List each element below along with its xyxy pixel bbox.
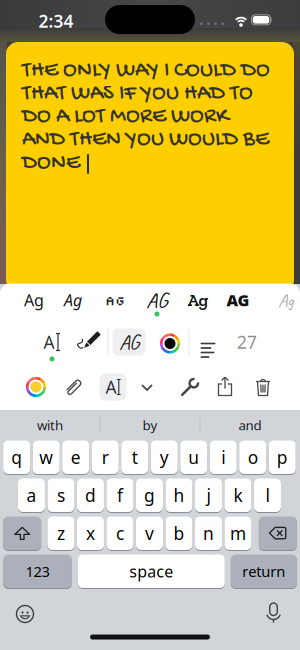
button[interactable]: and (238, 416, 261, 434)
button[interactable]: Delete (259, 516, 297, 550)
staticText: Ag (278, 288, 294, 312)
staticText: AG (146, 286, 168, 314)
button[interactable]: More (141, 384, 153, 392)
staticText: Ag (105, 291, 125, 309)
button[interactable]: AG (146, 286, 168, 314)
staticText: Ag (64, 289, 82, 311)
staticText: v (145, 522, 154, 545)
staticText: A (105, 375, 116, 398)
button[interactable]: g (136, 478, 163, 512)
button[interactable]: Share (217, 376, 232, 396)
staticText: THE ONLY WAY I COULD DO (22, 58, 270, 85)
staticText: e (71, 446, 81, 469)
button[interactable]: r (92, 440, 119, 474)
button[interactable]: by (142, 416, 157, 434)
button[interactable]: return (231, 554, 297, 588)
button[interactable]: Ag (187, 290, 208, 310)
button[interactable]: Text color (159, 332, 181, 354)
button[interactable]: b (165, 516, 192, 550)
button[interactable]: i (210, 440, 237, 474)
button[interactable]: with (37, 416, 63, 434)
button[interactable]: s (47, 478, 74, 512)
button[interactable]: 27 (237, 330, 257, 353)
staticText: space (129, 561, 173, 582)
staticText: y (160, 446, 169, 469)
staticText: DONE (22, 151, 80, 177)
button[interactable]: w (33, 440, 60, 474)
button[interactable]: Emoji (15, 604, 35, 624)
button[interactable]: z (47, 516, 74, 550)
staticText: n (203, 522, 214, 545)
button[interactable]: Tools (179, 376, 201, 398)
staticText: by (142, 416, 157, 434)
staticText: s (57, 484, 65, 507)
staticText: DO A LOT MORE WORK (22, 104, 228, 131)
button[interactable]: u (180, 440, 207, 474)
button[interactable]: k (224, 478, 251, 512)
staticText: m (230, 522, 246, 545)
button[interactable]: l (254, 478, 281, 512)
button[interactable]: Alignment (200, 334, 216, 351)
staticText: t (132, 446, 138, 469)
staticText: c (116, 522, 124, 545)
staticText: u (188, 446, 199, 469)
staticText: o (248, 446, 258, 469)
button[interactable]: n (195, 516, 222, 550)
button[interactable]: t (121, 440, 148, 474)
button[interactable]: Delete (255, 378, 270, 396)
staticText: b (173, 522, 184, 545)
button[interactable]: e (62, 440, 89, 474)
button[interactable]: y (151, 440, 178, 474)
button[interactable]: f (106, 478, 133, 512)
button[interactable]: Paper color (25, 376, 47, 398)
button[interactable]: o (239, 440, 266, 474)
button[interactable]: q (3, 440, 30, 474)
button[interactable]: Draw (76, 330, 102, 356)
staticText: z (57, 522, 65, 545)
button[interactable]: Dictate (265, 603, 281, 622)
staticText: a (26, 484, 36, 507)
staticText: 123 (25, 561, 49, 581)
staticText: r (102, 446, 109, 469)
staticText: and (238, 416, 261, 434)
staticText: h (173, 484, 184, 507)
staticText: Ag (24, 289, 44, 311)
button[interactable]: AG (226, 289, 249, 311)
button[interactable]: Attach (62, 375, 86, 399)
button[interactable]: Ag (278, 288, 294, 312)
staticText: w (39, 446, 53, 469)
staticText: return (242, 561, 285, 581)
staticText: AG (226, 289, 249, 311)
button[interactable]: m (224, 516, 251, 550)
staticText: q (11, 446, 22, 469)
button[interactable]: h (165, 478, 192, 512)
staticText: g (144, 484, 155, 507)
staticText: j (206, 484, 210, 507)
button[interactable]: j (195, 478, 222, 512)
button[interactable]: p (269, 440, 296, 474)
button[interactable]: Font (112, 328, 145, 355)
button[interactable]: space (78, 554, 225, 588)
staticText: AND THEN YOU WOULD BE (22, 127, 269, 154)
staticText: 27 (237, 330, 257, 353)
staticText: i (221, 446, 225, 469)
staticText: p (277, 446, 288, 469)
button[interactable]: Ag (105, 291, 125, 309)
button[interactable]: a (18, 478, 45, 512)
staticText: A (43, 330, 54, 353)
button[interactable]: 123 (3, 554, 72, 588)
button[interactable]: c (106, 516, 133, 550)
staticText: x (86, 522, 95, 545)
button[interactable]: Text tool (99, 373, 126, 400)
button[interactable]: Text style (39, 328, 65, 356)
button[interactable]: Ag (24, 289, 44, 311)
button[interactable]: Ag (64, 289, 82, 311)
staticText: k (233, 484, 242, 507)
button[interactable]: d (77, 478, 104, 512)
button[interactable]: x (77, 516, 104, 550)
button[interactable]: Shift (3, 516, 41, 550)
staticText: 2:34 (38, 9, 73, 32)
staticText: with (37, 416, 63, 434)
button[interactable]: v (136, 516, 163, 550)
staticText: f (117, 484, 123, 507)
